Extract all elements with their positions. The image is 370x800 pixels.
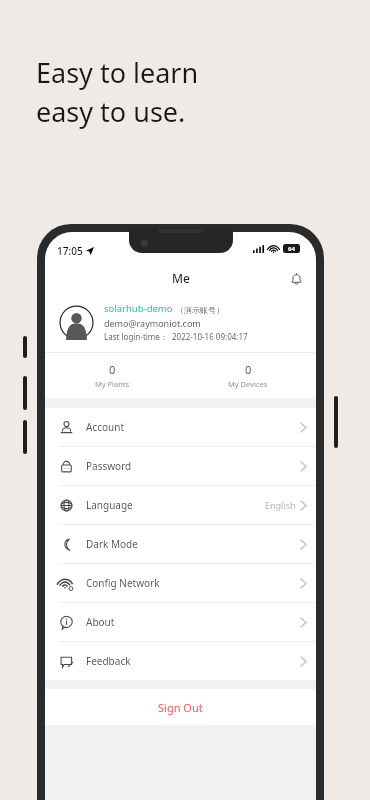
staticText: My Plants bbox=[95, 379, 130, 389]
staticText: Easy to learn bbox=[36, 54, 199, 91]
button[interactable]: 0 bbox=[180, 362, 316, 389]
staticText: Sign Out bbox=[158, 700, 203, 715]
staticText: About bbox=[86, 615, 115, 629]
button[interactable]: Feedback bbox=[45, 642, 316, 680]
staticText: Dark Mode bbox=[86, 537, 138, 551]
button[interactable]: Language bbox=[45, 486, 316, 524]
staticText: 0 bbox=[245, 362, 252, 377]
staticText: Account bbox=[86, 420, 125, 434]
staticText: Password bbox=[86, 459, 132, 473]
staticText: Last login-time： 2022-10-16 09:04:17 bbox=[104, 331, 248, 342]
staticText: easy to use. bbox=[36, 93, 186, 130]
staticText: Me bbox=[172, 270, 190, 286]
button[interactable]: Password bbox=[45, 447, 316, 485]
staticText: demo@raymoniot.com bbox=[104, 317, 201, 329]
staticText: English bbox=[265, 499, 296, 511]
button[interactable]: Dark Mode bbox=[45, 525, 316, 563]
button[interactable]: 0 bbox=[45, 362, 180, 389]
staticText: （演示账号） bbox=[176, 305, 224, 315]
button[interactable]: Config Network bbox=[45, 564, 316, 602]
button[interactable]: About bbox=[45, 603, 316, 641]
staticText: Feedback bbox=[86, 654, 131, 668]
staticText: solarhub-demo bbox=[104, 302, 173, 315]
staticText: Language bbox=[86, 498, 133, 512]
staticText: My Devices bbox=[228, 379, 268, 389]
button[interactable]: Notifications bbox=[286, 268, 306, 288]
staticText: 17:05 bbox=[57, 244, 83, 258]
button[interactable]: Account bbox=[45, 408, 316, 446]
staticText: 0 bbox=[109, 362, 116, 377]
button[interactable]: Sign Out bbox=[45, 689, 316, 725]
staticText: Config Network bbox=[86, 576, 160, 590]
staticText: 64 bbox=[288, 245, 295, 253]
